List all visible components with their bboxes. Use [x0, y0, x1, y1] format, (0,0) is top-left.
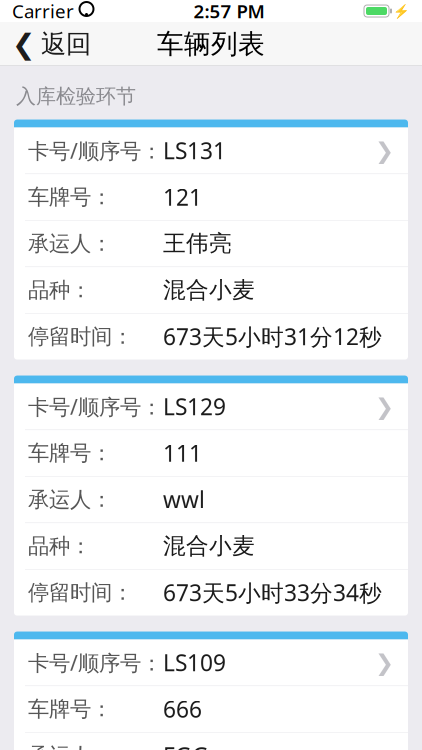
- button[interactable]: ❮: [0, 22, 103, 66]
- staticText: LS129: [163, 391, 226, 422]
- staticText: LS131: [163, 135, 226, 166]
- staticText: LS109: [163, 647, 226, 678]
- staticText: ❯: [375, 650, 394, 675]
- button[interactable]: 卡号/顺序号：: [0, 376, 422, 616]
- staticText: FGG: [163, 740, 209, 750]
- staticText: 承运人：: [28, 230, 112, 257]
- staticText: 卡号/顺序号：: [28, 648, 162, 677]
- staticText: 车牌号：: [28, 184, 112, 210]
- staticText: 673天5小时33分34秒: [163, 577, 382, 608]
- staticText: 停留时间：: [28, 579, 133, 606]
- staticText: 入库检验环节: [16, 84, 136, 109]
- staticText: 2:57 PM: [193, 0, 264, 23]
- button[interactable]: 卡号/顺序号：: [0, 632, 422, 750]
- staticText: 666: [163, 694, 202, 724]
- staticText: 返回: [41, 28, 91, 59]
- staticText: 停留时间：: [28, 323, 133, 350]
- staticText: ⚡: [393, 3, 410, 19]
- staticText: 121: [163, 182, 202, 212]
- staticText: 承运人：: [28, 486, 112, 513]
- staticText: wwl: [163, 484, 205, 515]
- staticText: 品种：: [28, 533, 91, 559]
- staticText: 品种：: [28, 277, 91, 303]
- staticText: 卡号/顺序号：: [28, 136, 162, 165]
- staticText: 673天5小时31分12秒: [163, 321, 382, 352]
- staticText: 车牌号：: [28, 696, 112, 722]
- staticText: 王伟亮: [163, 230, 232, 257]
- staticText: ❯: [375, 394, 394, 419]
- staticText: 卡号/顺序号：: [28, 392, 162, 421]
- button[interactable]: 卡号/顺序号：: [0, 120, 422, 360]
- staticText: 111: [163, 438, 202, 468]
- staticText: ❯: [375, 138, 394, 163]
- staticText: 混合小麦: [163, 532, 255, 560]
- staticText: Carrier: [12, 0, 74, 23]
- staticText: 混合小麦: [163, 276, 255, 304]
- staticText: 车辆列表: [157, 28, 265, 60]
- staticText: 车牌号：: [28, 440, 112, 466]
- staticText: [74, 0, 79, 23]
- staticText: 承运人：: [28, 742, 112, 750]
- staticText: ❮: [12, 28, 35, 60]
